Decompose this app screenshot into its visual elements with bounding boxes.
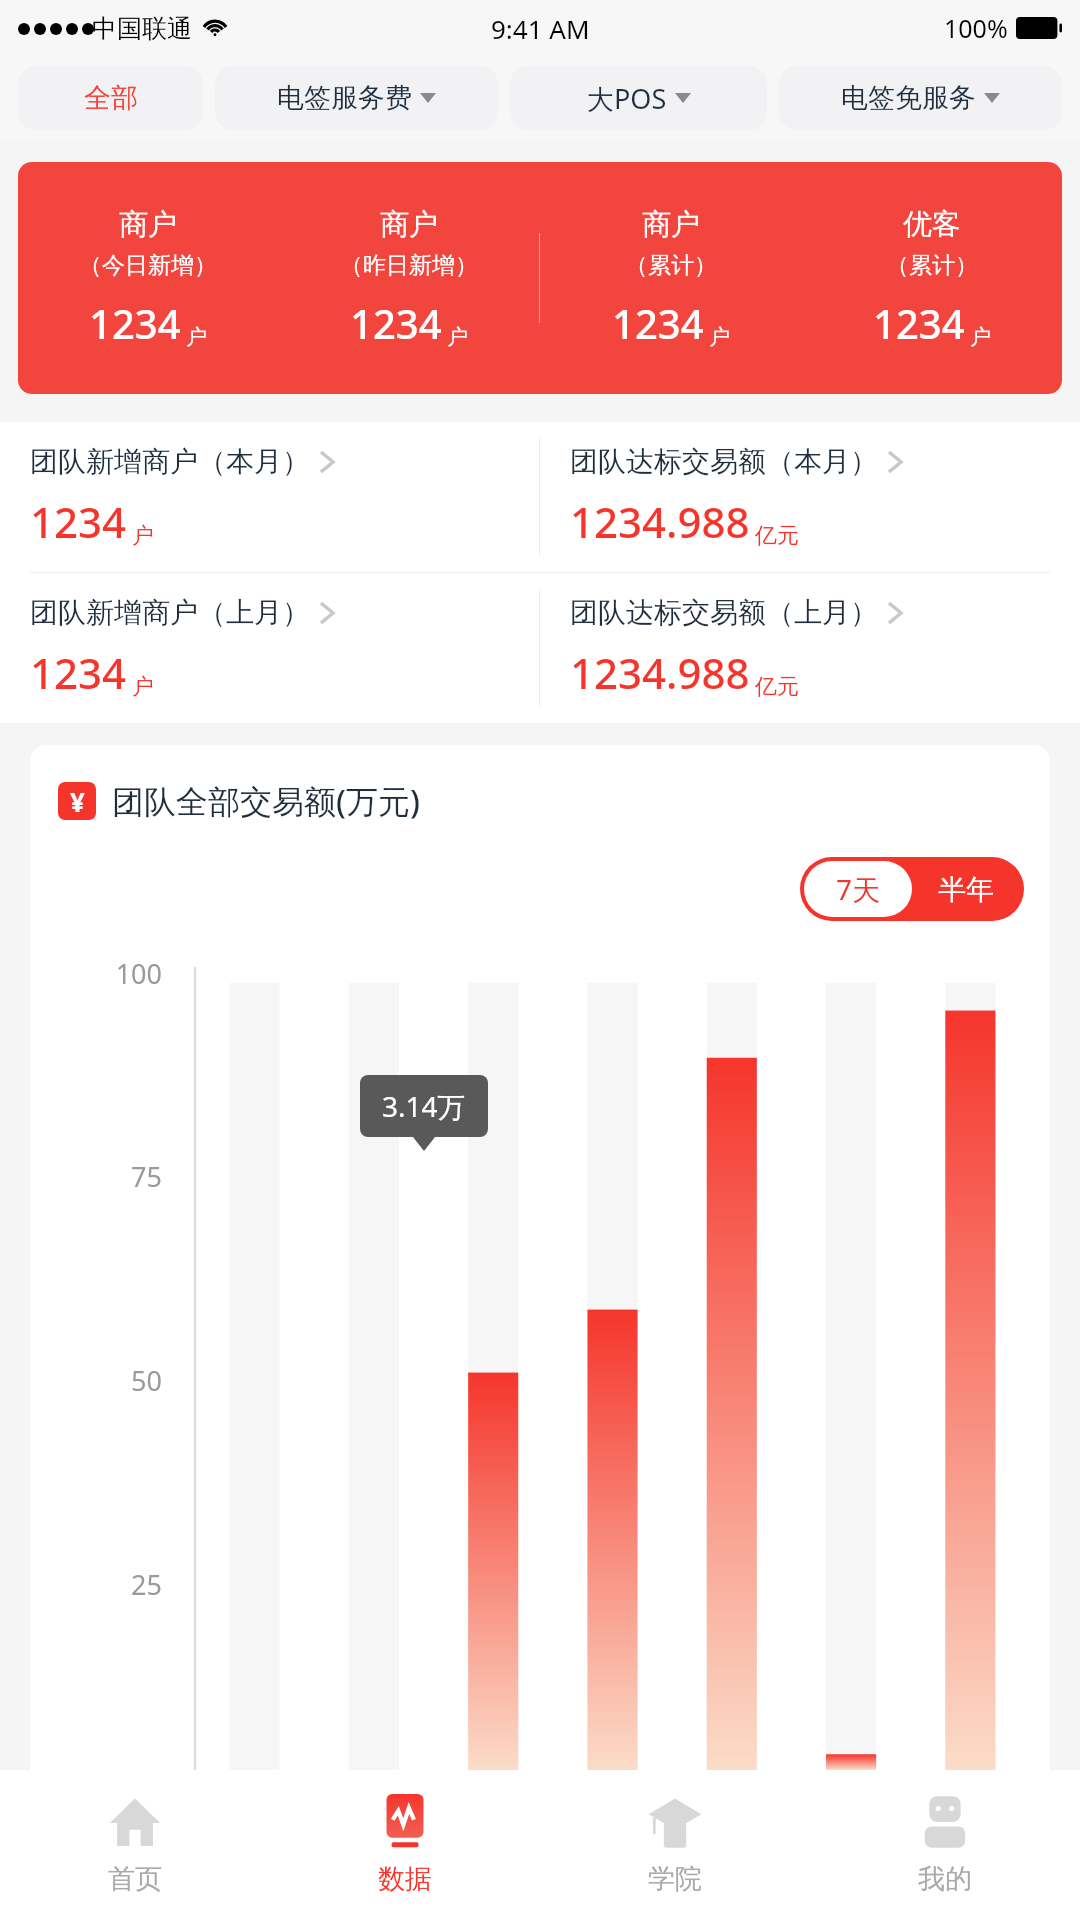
staticText: 我的 — [918, 1862, 972, 1896]
button[interactable]: 商户 — [278, 162, 539, 394]
staticText: （今日新增） — [79, 251, 217, 280]
staticText: （昨日新增） — [340, 251, 478, 280]
button[interactable]: 7天 — [804, 861, 912, 917]
button[interactable]: 全部 — [18, 66, 203, 130]
staticText: 1234.988 — [570, 644, 750, 701]
staticText: 亿元 — [755, 522, 799, 550]
button[interactable]: 团队达标交易额（上月） — [540, 573, 1080, 723]
staticText: 中国联通 — [92, 13, 192, 44]
staticText: （累计） — [886, 251, 978, 280]
staticText: 户 — [970, 324, 991, 350]
button[interactable]: 首页 — [0, 1770, 270, 1920]
button[interactable]: 大POS — [510, 66, 767, 130]
button[interactable]: 7天 — [800, 857, 1024, 921]
staticText: 1234.988 — [570, 493, 750, 550]
staticText: 3.14万 — [382, 1087, 466, 1125]
staticText: 1234 — [30, 493, 127, 550]
staticText: 100% — [944, 11, 1008, 45]
button[interactable]: 我的 — [810, 1770, 1080, 1920]
staticText: 优客 — [903, 206, 961, 243]
button[interactable]: 商户 — [18, 162, 278, 394]
staticText: 电签免服务 — [841, 81, 976, 115]
staticText: （累计） — [625, 251, 717, 280]
staticText: 1234 — [350, 296, 442, 350]
button[interactable]: 电签服务费 — [215, 66, 498, 130]
staticText: 25 — [131, 1566, 162, 1603]
staticText: 户 — [709, 324, 730, 350]
staticText: 全部 — [84, 81, 138, 115]
button[interactable]: 优客 — [801, 162, 1062, 394]
staticText: 首页 — [108, 1862, 162, 1896]
button[interactable]: 团队达标交易额（本月） — [540, 422, 1080, 572]
staticText: 75 — [131, 1158, 162, 1195]
staticText: 7天 — [836, 870, 881, 908]
staticText: 电签服务费 — [277, 81, 412, 115]
staticText: 户 — [186, 324, 207, 350]
staticText: 50 — [131, 1362, 162, 1399]
button[interactable]: 数据 — [270, 1770, 540, 1920]
staticText: 商户 — [642, 206, 700, 243]
staticText: 大POS — [587, 80, 667, 117]
staticText: 1234 — [89, 296, 181, 350]
staticText: 100 — [115, 955, 162, 992]
staticText: 亿元 — [755, 673, 799, 701]
staticText: ¥ — [70, 784, 85, 819]
staticText: 学院 — [648, 1862, 702, 1896]
staticText: 商户 — [380, 206, 438, 243]
staticText: 团队达标交易额（本月） — [570, 444, 878, 479]
button[interactable]: 团队新增商户（上月） — [0, 573, 539, 723]
staticText: 户 — [447, 324, 468, 350]
button[interactable]: 团队新增商户（本月） — [0, 422, 539, 572]
button[interactable]: ¥ — [58, 779, 1050, 823]
button[interactable]: 商户 — [540, 162, 801, 394]
staticText: 团队新增商户（上月） — [30, 595, 310, 630]
staticText: 1234 — [612, 296, 704, 350]
button[interactable]: 电签免服务 — [779, 66, 1062, 130]
staticText: 团队全部交易额(万元) — [112, 779, 420, 823]
staticText: 团队达标交易额（上月） — [570, 595, 878, 630]
staticText: 户 — [132, 522, 154, 550]
staticText: 商户 — [119, 206, 177, 243]
button[interactable]: 半年 — [912, 861, 1020, 917]
staticText: 1234 — [873, 296, 965, 350]
button[interactable]: 学院 — [540, 1770, 810, 1920]
staticText: 数据 — [378, 1862, 432, 1896]
staticText: 团队新增商户（本月） — [30, 444, 310, 479]
staticText: 9:41 AM — [491, 11, 590, 46]
staticText: 户 — [132, 673, 154, 701]
staticText: 半年 — [938, 872, 994, 907]
staticText: 1234 — [30, 644, 127, 701]
